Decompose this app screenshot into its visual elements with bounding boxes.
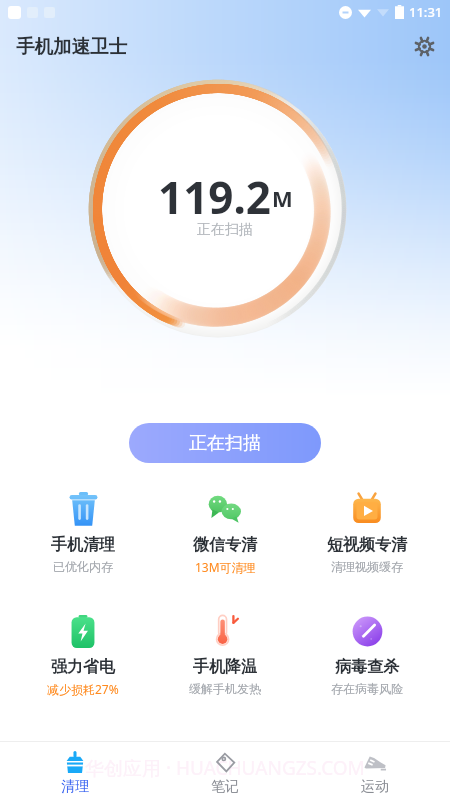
staticText: 清理 bbox=[61, 778, 89, 796]
button[interactable]: 运动 bbox=[300, 750, 450, 796]
staticText: 华创应用 · HUACHUANGZS.COM bbox=[85, 755, 365, 781]
staticText: 存在病毒风险 bbox=[331, 681, 403, 696]
staticText: 正在扫描 bbox=[197, 221, 253, 239]
staticText: 微信专清 bbox=[193, 535, 257, 555]
button[interactable]: Settings bbox=[408, 30, 440, 62]
button[interactable]: 手机降温 bbox=[154, 611, 296, 696]
button[interactable]: 强力省电 bbox=[12, 611, 154, 697]
staticText: 强力省电 bbox=[51, 657, 115, 677]
staticText: 病毒查杀 bbox=[335, 657, 399, 677]
staticText: M bbox=[272, 183, 293, 213]
button[interactable]: 正在扫描 bbox=[129, 423, 321, 463]
staticText: 手机降温 bbox=[193, 657, 257, 677]
staticText: 119.2 bbox=[158, 167, 272, 217]
button[interactable]: 清理 bbox=[0, 750, 150, 796]
staticText: 短视频专清 bbox=[327, 535, 407, 555]
staticText: 正在扫描 bbox=[189, 432, 261, 455]
button[interactable]: 微信专清 bbox=[154, 489, 296, 575]
staticText: 减少损耗27% bbox=[47, 681, 119, 697]
button[interactable]: 病毒查杀 bbox=[296, 611, 438, 696]
staticText: 缓解手机发热 bbox=[189, 681, 261, 696]
button[interactable]: 笔记 bbox=[150, 750, 300, 796]
button[interactable]: 手机清理 bbox=[12, 489, 154, 574]
staticText: 运动 bbox=[361, 778, 389, 796]
staticText: 11:31 bbox=[409, 3, 443, 21]
staticText: 清理视频缓存 bbox=[331, 559, 403, 574]
staticText: 13M可清理 bbox=[195, 559, 256, 575]
staticText: 手机加速卫士 bbox=[16, 35, 127, 58]
button[interactable]: 短视频专清 bbox=[296, 489, 438, 574]
staticText: 笔记 bbox=[211, 778, 239, 796]
staticText: 手机清理 bbox=[51, 535, 115, 555]
staticText: 已优化内存 bbox=[53, 559, 113, 574]
